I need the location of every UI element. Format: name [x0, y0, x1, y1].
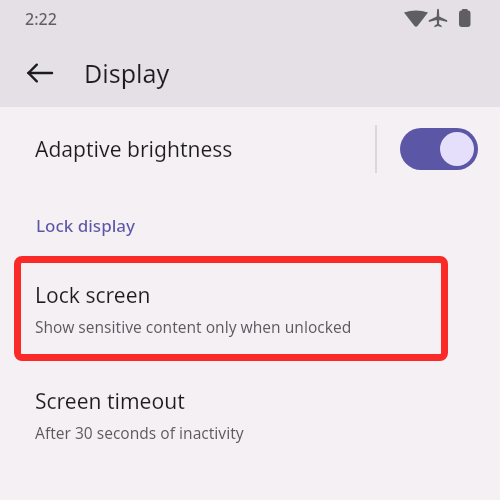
staticText: 2:22	[25, 8, 57, 30]
staticText: Screen timeout	[35, 387, 185, 416]
staticText: Display	[84, 56, 170, 90]
button[interactable]: Lock screen	[14, 256, 448, 361]
staticText: Lock display	[36, 214, 135, 237]
button[interactable]: Adaptive brightness toggle, on	[400, 128, 478, 170]
button[interactable]: Adaptive brightness	[0, 107, 500, 191]
button[interactable]: Screen timeout	[0, 383, 500, 455]
staticText: Adaptive brightness	[35, 135, 375, 164]
staticText: After 30 seconds of inactivity	[35, 422, 244, 443]
staticText: Lock screen	[35, 281, 151, 310]
staticText: Show sensitive content only when unlocke…	[35, 316, 352, 337]
button[interactable]: Back	[16, 49, 64, 97]
